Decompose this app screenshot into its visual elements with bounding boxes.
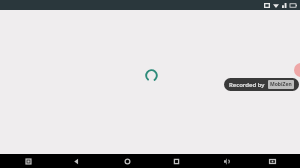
button[interactable]: Recents — [20, 154, 36, 168]
staticText: Recorded by — [229, 81, 265, 89]
button[interactable]: Back — [68, 154, 84, 168]
button[interactable]: Overview — [168, 154, 184, 168]
button[interactable]: Screenshot — [264, 154, 280, 168]
button[interactable]: Recorded by — [224, 78, 299, 91]
button[interactable]: Home — [119, 154, 135, 168]
button[interactable]: Volume — [218, 154, 234, 168]
staticText: MobiZen — [270, 81, 292, 88]
